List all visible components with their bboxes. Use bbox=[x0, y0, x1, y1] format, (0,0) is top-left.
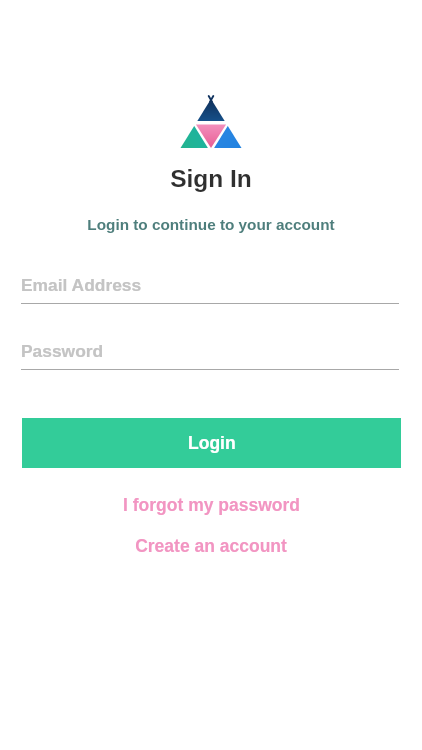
staticText: Email Address bbox=[21, 275, 142, 294]
staticText: Sign In bbox=[170, 165, 252, 192]
staticText: Login to continue to your account bbox=[87, 216, 335, 233]
button[interactable]: Email Address bbox=[21, 267, 399, 305]
staticText: Password bbox=[21, 341, 104, 360]
button[interactable]: Login bbox=[22, 418, 401, 468]
staticText: Create an account bbox=[135, 536, 287, 556]
staticText: I forgot my password bbox=[123, 495, 300, 515]
button[interactable]: Create an account bbox=[0, 530, 422, 562]
button[interactable]: Password bbox=[21, 333, 399, 371]
button[interactable]: I forgot my password bbox=[0, 489, 422, 521]
staticText: Login bbox=[188, 433, 236, 453]
